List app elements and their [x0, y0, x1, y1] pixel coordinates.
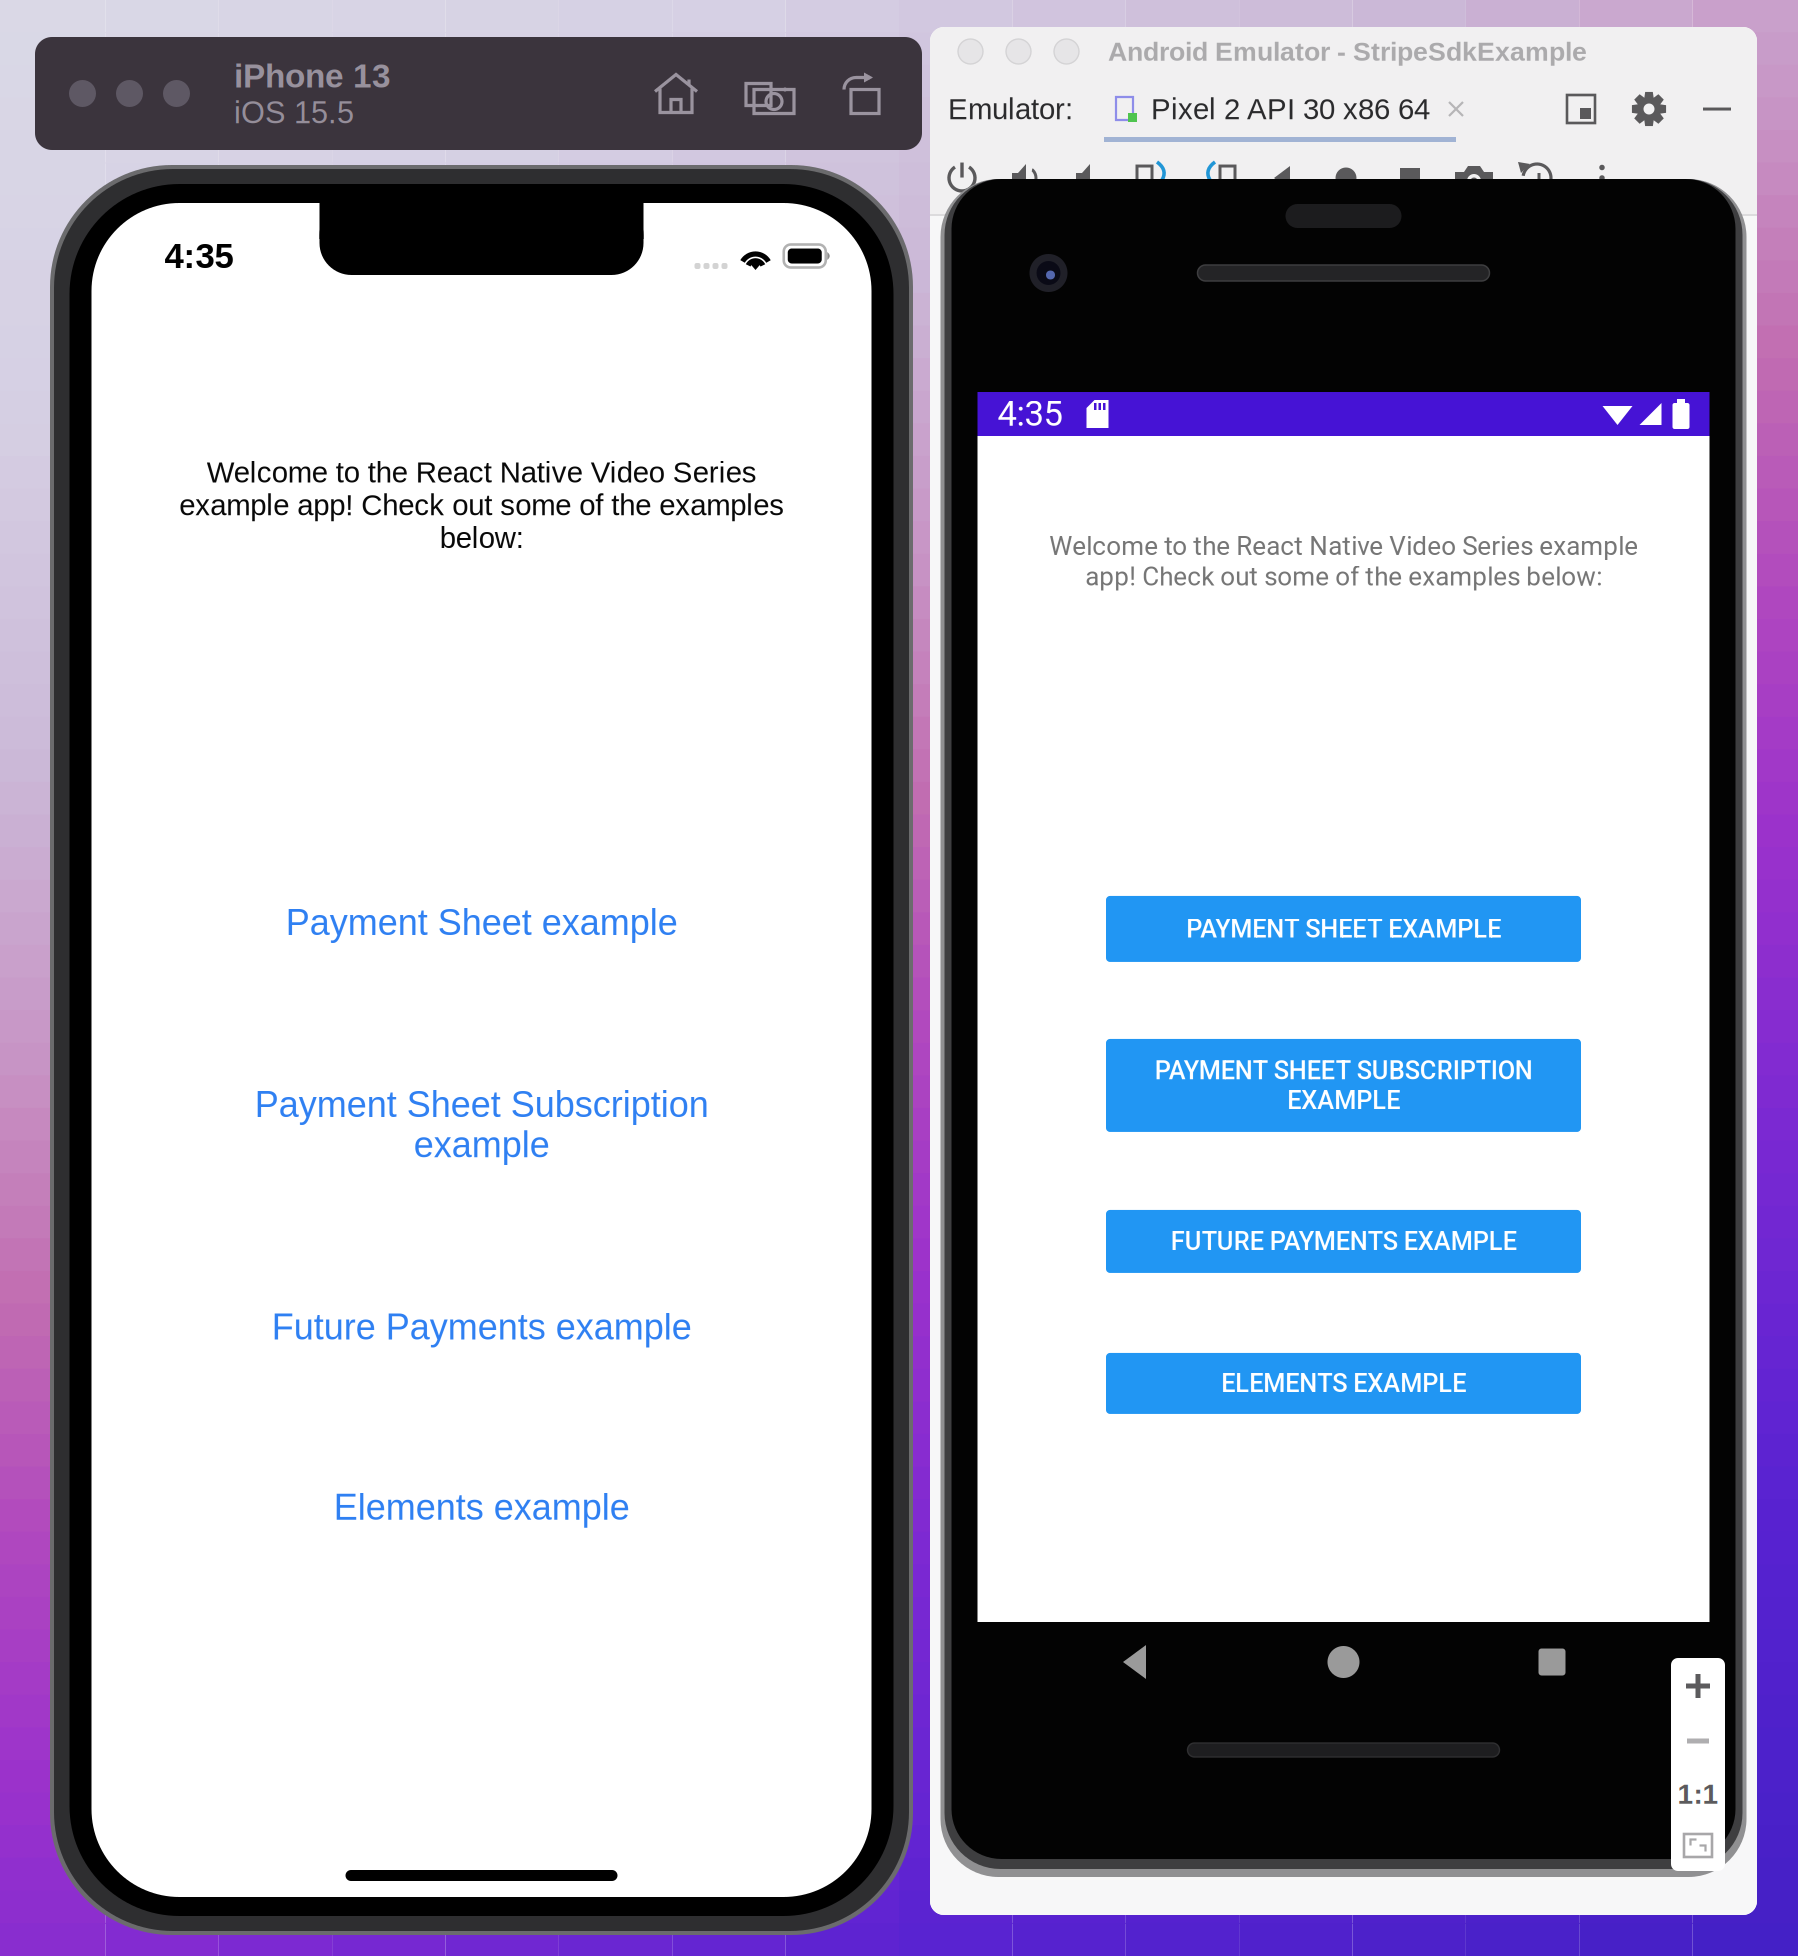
button[interactable]: Back [1075, 1622, 1195, 1702]
button[interactable]: Home [1283, 1622, 1403, 1702]
staticText: iPhone 13 [234, 57, 391, 94]
button[interactable]: Zoom out [1671, 1714, 1725, 1768]
button[interactable]: PAYMENT SHEET EXAMPLE [1106, 896, 1581, 962]
staticText: Android Emulator - StripeSdkExample [1108, 37, 1587, 66]
button[interactable]: Back [1260, 156, 1304, 200]
button[interactable]: PAYMENT SHEET SUBSCRIPTION EXAMPLE [1106, 1039, 1581, 1132]
button[interactable]: Payment Sheet Subscription example [246, 1084, 716, 1165]
staticText: PAYMENT SHEET EXAMPLE [1186, 914, 1501, 944]
button[interactable]: Overview [1388, 156, 1432, 200]
button[interactable]: Recents [1492, 1622, 1612, 1702]
button[interactable]: Rotate [842, 71, 886, 115]
staticText: FUTURE PAYMENTS EXAMPLE [1170, 1227, 1516, 1256]
staticText: Welcome to the React Native Video Series… [1049, 531, 1638, 592]
button[interactable]: Minimize [1701, 93, 1733, 125]
button[interactable]: Zoom in [1671, 1658, 1725, 1714]
button[interactable]: Toggle panel [1567, 95, 1595, 123]
button[interactable]: Rotate left [1132, 156, 1176, 200]
staticText: iOS 15.5 [234, 95, 354, 130]
staticText: Welcome to the React Native Video Series… [179, 456, 784, 554]
button[interactable]: ELEMENTS EXAMPLE [1106, 1353, 1581, 1414]
button[interactable]: Home [654, 71, 698, 115]
staticText: 1:1 [1677, 1778, 1718, 1810]
button[interactable]: Elements example [201, 1487, 761, 1527]
staticText: Payment Sheet Subscription example [254, 1084, 708, 1165]
staticText: Emulator: [948, 93, 1073, 125]
button[interactable]: Future Payments example [201, 1307, 761, 1347]
button[interactable]: Record screen [1516, 156, 1560, 200]
staticText: 4:35 [997, 394, 1062, 434]
button[interactable]: Actual size [1671, 1768, 1725, 1820]
button[interactable]: FUTURE PAYMENTS EXAMPLE [1106, 1210, 1581, 1273]
button[interactable]: Payment Sheet example [201, 902, 761, 942]
button[interactable]: Screenshot [744, 71, 796, 115]
button[interactable]: More [1580, 156, 1624, 200]
staticText: Future Payments example [271, 1307, 691, 1347]
button[interactable]: Rotate right [1196, 156, 1240, 200]
button[interactable]: Pixel 2 API 30 x86 64 [1113, 76, 1478, 142]
button[interactable]: Power [940, 156, 984, 200]
staticText: Payment Sheet example [285, 902, 677, 942]
staticText: ELEMENTS EXAMPLE [1221, 1369, 1466, 1398]
staticText: Elements example [333, 1487, 629, 1527]
button[interactable]: Fit to window [1671, 1820, 1725, 1871]
button[interactable]: Home [1324, 156, 1368, 200]
button[interactable]: Screenshot [1452, 156, 1496, 200]
staticText: 4:35 [164, 237, 233, 275]
staticText: Pixel 2 API 30 x86 64 [1151, 93, 1430, 125]
button[interactable]: Settings [1631, 91, 1667, 127]
staticText: PAYMENT SHEET SUBSCRIPTION EXAMPLE [1154, 1056, 1532, 1115]
button[interactable]: Volume up [1004, 156, 1048, 200]
button[interactable]: Volume down [1068, 156, 1112, 200]
